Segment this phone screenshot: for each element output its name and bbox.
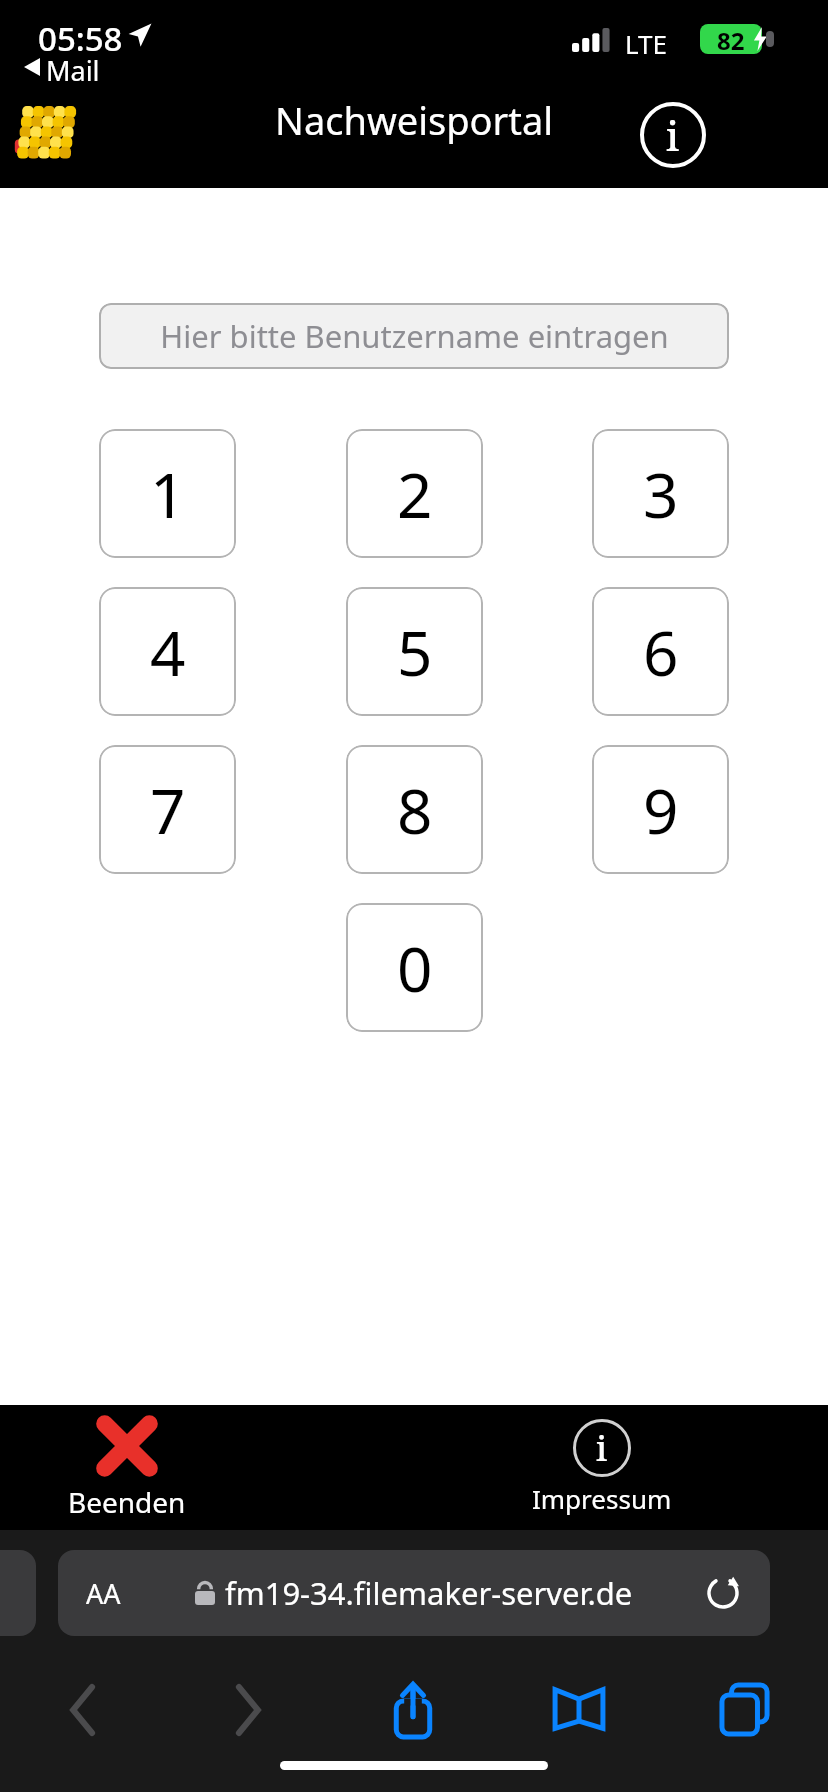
staticText: 8 bbox=[397, 768, 433, 852]
staticText: 5 bbox=[397, 610, 433, 694]
staticText: 4 bbox=[150, 610, 186, 694]
button[interactable]: 1 bbox=[99, 429, 236, 558]
button[interactable]: AA bbox=[58, 1550, 770, 1636]
button[interactable]: Beenden bbox=[42, 1405, 212, 1530]
button[interactable]: 5 bbox=[346, 587, 483, 716]
button[interactable]: Forward bbox=[165, 1670, 330, 1750]
staticText: 0 bbox=[397, 926, 433, 1010]
button[interactable]: 2 bbox=[346, 429, 483, 558]
staticText: Beenden bbox=[68, 1483, 186, 1521]
staticText: LTE bbox=[625, 26, 668, 61]
other: Reload bbox=[706, 1576, 740, 1610]
staticText: 7 bbox=[150, 768, 186, 852]
staticText: 6 bbox=[643, 610, 679, 694]
button[interactable]: 9 bbox=[592, 745, 729, 874]
staticText: i bbox=[666, 108, 680, 162]
staticText: i bbox=[596, 1425, 608, 1471]
button[interactable]: Bookmarks bbox=[496, 1670, 662, 1750]
staticText: Hier bitte Benutzername eintragen bbox=[160, 315, 669, 357]
staticText: Nachweisportal bbox=[275, 94, 554, 146]
staticText: Mail bbox=[46, 52, 100, 89]
button[interactable]: i bbox=[518, 1405, 686, 1530]
staticText: fm19-34.filemaker-server.de bbox=[225, 1572, 633, 1614]
staticText: 3 bbox=[643, 452, 679, 536]
button[interactable]: 8 bbox=[346, 745, 483, 874]
staticText: 2 bbox=[397, 452, 433, 536]
staticText: 1 bbox=[150, 452, 186, 536]
button[interactable]: 7 bbox=[99, 745, 236, 874]
button[interactable]: 4 bbox=[99, 587, 236, 716]
button[interactable]: Share bbox=[330, 1670, 496, 1750]
staticText: 82 bbox=[717, 24, 745, 54]
button[interactable]: 6 bbox=[592, 587, 729, 716]
staticText: Impressum bbox=[532, 1481, 672, 1516]
button[interactable]: Back bbox=[0, 1670, 165, 1750]
staticText: 9 bbox=[643, 768, 679, 852]
button[interactable]: Info bbox=[638, 100, 708, 170]
staticText: AA bbox=[86, 1575, 121, 1612]
button[interactable]: 3 bbox=[592, 429, 729, 558]
button[interactable]: 0 bbox=[346, 903, 483, 1032]
staticText: 05:58 bbox=[38, 16, 123, 61]
button[interactable]: Tabs bbox=[662, 1670, 828, 1750]
button[interactable]: Hier bitte Benutzername eintragen bbox=[99, 303, 729, 369]
